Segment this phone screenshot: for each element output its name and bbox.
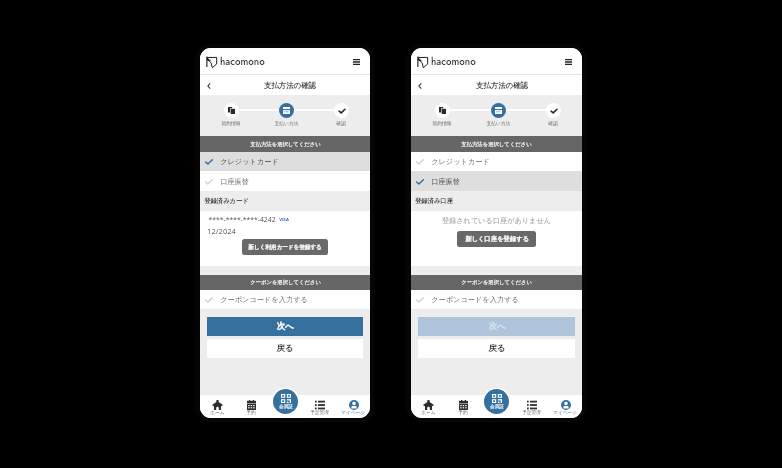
- staticText: 口座振替: [220, 177, 249, 186]
- staticText: 新しく口座を登録する: [465, 235, 529, 243]
- staticText: 確認: [548, 120, 558, 126]
- staticText: 戻る: [488, 343, 506, 354]
- staticText: クーポンを選択してください: [461, 279, 532, 286]
- staticText: クーポンを選択してください: [250, 279, 321, 286]
- staticText: 支払い方法: [486, 120, 511, 126]
- staticText: 新しく利用カードを登録する: [248, 244, 322, 251]
- staticText: 契約情報: [221, 120, 241, 126]
- staticText: 口座振替: [431, 177, 460, 186]
- button[interactable]: 確認: [538, 95, 568, 126]
- staticText: 次へ: [488, 321, 506, 332]
- button[interactable]: 次へ: [207, 317, 363, 336]
- staticText: 戻る: [276, 343, 294, 354]
- button[interactable]: クーポンコードを入力する: [200, 290, 370, 309]
- button[interactable]: 支払い方法: [483, 95, 513, 126]
- staticText: 会員証: [490, 404, 504, 410]
- button[interactable]: マイページ: [336, 395, 370, 416]
- staticText: 契約情報: [432, 120, 452, 126]
- staticText: 会員証: [279, 404, 293, 410]
- button[interactable]: 会員証: [273, 389, 298, 414]
- button[interactable]: Menu: [561, 55, 575, 69]
- staticText: hacomono: [220, 55, 265, 69]
- staticText: 予定管理: [522, 409, 541, 415]
- button[interactable]: クーポンコードを入力する: [411, 290, 582, 309]
- staticText: 支払方法を選択してください: [461, 141, 532, 148]
- button[interactable]: ホーム: [411, 395, 446, 416]
- staticText: hacomono: [431, 55, 476, 69]
- staticText: マイページ: [341, 409, 365, 415]
- button[interactable]: マイページ: [548, 395, 582, 416]
- button[interactable]: 会員証: [484, 389, 509, 414]
- staticText: 予定管理: [310, 409, 329, 415]
- staticText: 予約: [246, 409, 256, 415]
- button[interactable]: Back: [411, 77, 428, 94]
- staticText: 支払い方法: [274, 120, 299, 126]
- staticText: マイページ: [553, 409, 577, 415]
- staticText: 登録されている口座がありません: [442, 216, 551, 225]
- button[interactable]: 予約: [446, 395, 480, 416]
- button[interactable]: クレジットカード: [411, 152, 582, 171]
- button[interactable]: 口座振替: [200, 171, 370, 191]
- button[interactable]: 戻る: [207, 339, 363, 358]
- staticText: VISA: [279, 217, 289, 223]
- staticText: 登録済み口座: [415, 197, 453, 205]
- button[interactable]: 契約情報: [427, 95, 457, 126]
- staticText: 確認: [336, 120, 346, 126]
- staticText: ****-****-****-4242: [208, 215, 276, 224]
- staticText: ホーム: [421, 409, 436, 415]
- button[interactable]: 予定管理: [514, 395, 548, 416]
- button[interactable]: Menu: [349, 55, 363, 69]
- button[interactable]: 確認: [326, 95, 356, 126]
- button[interactable]: 戻る: [418, 339, 575, 358]
- button[interactable]: 新しく利用カードを登録する: [242, 239, 328, 255]
- staticText: クーポンコードを入力する: [220, 295, 308, 304]
- button[interactable]: Back: [200, 77, 217, 94]
- staticText: 予約: [458, 409, 468, 415]
- staticText: 登録済みカード: [204, 197, 249, 205]
- button[interactable]: 支払い方法: [271, 95, 301, 126]
- button[interactable]: 新しく口座を登録する: [457, 231, 536, 247]
- staticText: 支払方法の確認: [264, 81, 316, 90]
- button[interactable]: 口座振替: [411, 171, 582, 191]
- button[interactable]: クレジットカード: [200, 152, 370, 171]
- button[interactable]: 次へ: [418, 317, 575, 336]
- button[interactable]: 契約情報: [216, 95, 246, 126]
- staticText: クレジットカード: [431, 157, 490, 166]
- staticText: 12/2024: [207, 226, 236, 236]
- staticText: 次へ: [276, 321, 294, 332]
- staticText: 支払方法を選択してください: [250, 141, 321, 148]
- staticText: 支払方法の確認: [476, 81, 528, 90]
- button[interactable]: ホーム: [200, 395, 234, 416]
- staticText: ホーム: [210, 409, 225, 415]
- button[interactable]: 予約: [234, 395, 268, 416]
- button[interactable]: 予定管理: [302, 395, 336, 416]
- staticText: クーポンコードを入力する: [431, 295, 519, 304]
- staticText: クレジットカード: [220, 157, 279, 166]
